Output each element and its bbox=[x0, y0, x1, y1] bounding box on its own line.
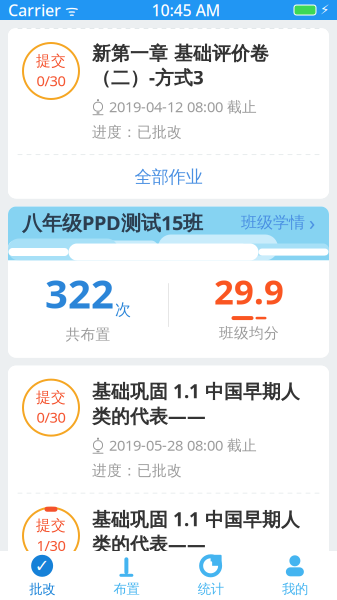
button[interactable]: 提交 bbox=[8, 366, 329, 493]
button[interactable]: 班级学情 bbox=[241, 209, 315, 236]
staticText: 进度：已批改 bbox=[92, 462, 182, 480]
button[interactable]: 全部作业 bbox=[8, 155, 329, 198]
staticText: 共布置 bbox=[65, 326, 110, 344]
staticText: 次 bbox=[115, 300, 131, 320]
staticText: 批改 bbox=[29, 581, 55, 597]
staticText: 新第一章 基础评价卷（二）-方式3 bbox=[92, 42, 269, 90]
staticText: 班级均分 bbox=[219, 324, 279, 342]
staticText: 八年级PPD测试15班 bbox=[22, 209, 203, 236]
button[interactable]: 我的 bbox=[253, 549, 337, 600]
staticText: 29.9 bbox=[214, 268, 284, 314]
button[interactable]: 提交 bbox=[8, 494, 329, 600]
staticText: 1/30 bbox=[36, 535, 65, 555]
staticText: 0/30 bbox=[36, 71, 65, 90]
staticText: 2019-04-12 08:00 截止 bbox=[109, 97, 257, 116]
staticText: 0/30 bbox=[36, 407, 65, 427]
staticText: 我的 bbox=[282, 581, 308, 597]
staticText: 提交 bbox=[36, 52, 66, 70]
staticText: 10:45 AM bbox=[151, 0, 220, 21]
staticText: 班级学情 bbox=[241, 213, 305, 232]
button[interactable]: ✓ bbox=[0, 549, 84, 600]
staticText: 2019-05-28 08:00 截止 bbox=[109, 435, 257, 455]
staticText: 进度：已批改 bbox=[92, 590, 182, 600]
staticText: 提交 bbox=[36, 388, 66, 406]
staticText: 提交 bbox=[36, 516, 66, 534]
staticText: 2019-05-28 08:00 截止 bbox=[109, 563, 257, 583]
staticText: 基础巩固 1.1 中国早期人类的代表—— bbox=[92, 507, 300, 556]
staticText: 全部作业 bbox=[134, 166, 202, 187]
staticText: ⚡︎ bbox=[316, 2, 329, 17]
staticText: 布置 bbox=[113, 581, 139, 597]
staticText: 322 bbox=[45, 266, 114, 320]
staticText: 基础巩固 1.1 中国早期人类的代表—— bbox=[92, 379, 300, 428]
button[interactable]: 布置 bbox=[84, 549, 168, 600]
staticText: ✓ bbox=[35, 556, 50, 576]
staticText: ᯤ bbox=[61, 0, 78, 20]
staticText: 统计 bbox=[198, 581, 224, 597]
staticText: › bbox=[309, 209, 315, 236]
button[interactable]: 提交 bbox=[8, 29, 329, 154]
staticText: 进度：已批改 bbox=[92, 123, 182, 141]
staticText: Carrier bbox=[8, 0, 61, 21]
button[interactable]: 统计 bbox=[168, 549, 253, 600]
